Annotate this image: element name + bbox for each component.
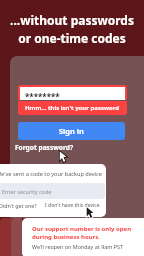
- staticText: Hmm... this isn't your password: [25, 104, 120, 112]
- staticText: or one-time codes: [18, 30, 126, 46]
- button[interactable]: ********: [20, 87, 125, 100]
- button[interactable]: Forgot password?: [15, 143, 74, 152]
- button[interactable]: I don't have this device: [45, 202, 100, 209]
- staticText: ********: [25, 91, 60, 100]
- button[interactable]: Didn't get one?: [0, 202, 37, 209]
- staticText: Forgot password?: [15, 143, 74, 152]
- button[interactable]: Enter security code: [0, 183, 105, 199]
- staticText: during business hours.: [32, 233, 100, 241]
- staticText: Enter security code: [2, 188, 52, 195]
- staticText: We'll reopen on Monday at 9am PST: [32, 243, 123, 250]
- staticText: We've sent a code to your backup device: [0, 170, 102, 178]
- staticText: ...without passwords: [10, 12, 134, 28]
- button[interactable]: Sign in: [18, 122, 125, 140]
- staticText: Sign in: [59, 126, 84, 136]
- staticText: Our support number is only open: [32, 225, 132, 233]
